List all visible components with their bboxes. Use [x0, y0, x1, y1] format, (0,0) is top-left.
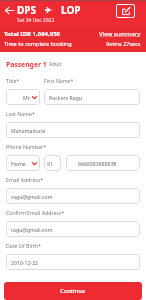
staticText: Title*: [6, 77, 20, 84]
button[interactable]: 2010-12-22: [6, 254, 140, 270]
staticText: Last Name*: [6, 110, 35, 117]
button[interactable]: ragu@gmail.com: [6, 188, 140, 204]
button[interactable]: 6668383888838: [66, 155, 140, 171]
staticText: Time to complete booking: [4, 40, 72, 47]
staticText: Adult: [49, 61, 62, 68]
button[interactable]: Rockers Ragu: [44, 89, 140, 105]
staticText: Manamadurai: [11, 127, 46, 134]
staticText: 91: [47, 160, 53, 167]
staticText: View summary: [99, 30, 141, 38]
button[interactable]: Mr: [6, 89, 40, 105]
staticText: 9mins 27secs: [106, 40, 141, 47]
button[interactable]: Home: [6, 155, 40, 171]
staticText: LOP: [61, 3, 81, 17]
staticText: DPS: [17, 3, 37, 17]
staticText: Phone Number*: [6, 143, 47, 150]
staticText: Home: [11, 160, 26, 167]
button[interactable]: View summary: [99, 30, 141, 47]
staticText: Passenger 1: [6, 60, 47, 69]
staticText: Total IDR 1,664,950: [4, 30, 61, 38]
staticText: Confirm Email Address*: [6, 209, 65, 216]
staticText: Continue: [60, 287, 86, 295]
button[interactable]: 91: [44, 155, 61, 171]
staticText: ragu@gmail.com: [11, 193, 53, 200]
staticText: Rockers Ragu: [49, 94, 83, 101]
button[interactable]: Back: [4, 5, 15, 16]
staticText: 2010-12-22: [11, 259, 39, 266]
staticText: Email Address*: [6, 176, 44, 183]
button[interactable]: Edit booking: [116, 4, 135, 18]
staticText: First Name*: [44, 77, 74, 84]
staticText: 6668383888838: [78, 160, 117, 167]
staticText: ragu@gmail.com: [11, 226, 53, 233]
staticText: Date Of Birth*: [6, 242, 41, 249]
button[interactable]: Continue: [4, 282, 142, 300]
button[interactable]: Manamadurai: [6, 122, 140, 138]
button[interactable]: ragu@gmail.com: [6, 221, 140, 237]
staticText: Sat 24 Dec 2022: [17, 17, 55, 24]
staticText: Mr: [23, 94, 30, 101]
